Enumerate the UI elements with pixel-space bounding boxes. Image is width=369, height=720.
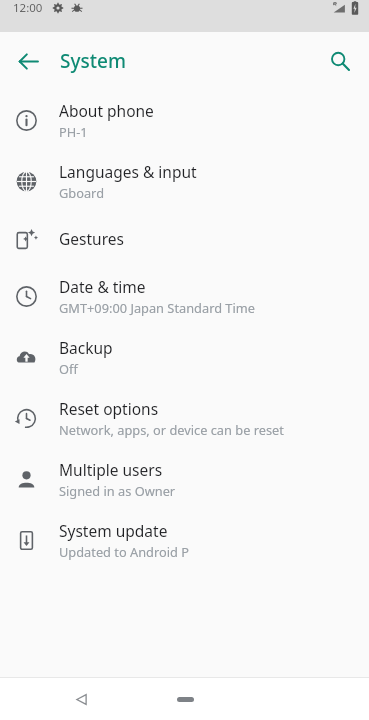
staticText: Date & time [59,276,146,297]
button[interactable]: Gestures [0,211,369,265]
staticText: Network, apps, or device can be reset [59,421,284,438]
button[interactable]: Home [163,684,207,714]
staticText: 12:00 [13,0,43,16]
staticText: Languages & input [59,161,197,182]
button[interactable]: Search [318,39,362,83]
button[interactable]: Back [6,39,50,83]
button[interactable]: Reset options [0,387,369,448]
staticText: Signed in as Owner [59,482,176,499]
staticText: System update [59,520,168,541]
staticText: GMT+09:00 Japan Standard Time [59,299,255,316]
staticText: Backup [59,337,113,358]
staticText: About phone [59,100,154,121]
button[interactable]: Date & time [0,265,369,326]
button[interactable]: Languages & input [0,150,369,211]
staticText: Multiple users [59,459,163,480]
button[interactable]: Multiple users [0,448,369,509]
staticText: Gboard [59,184,105,201]
button[interactable]: About phone [0,89,369,150]
button[interactable]: Backup [0,326,369,387]
staticText: System [60,48,126,74]
button[interactable]: System update [0,509,369,570]
staticText: Reset options [59,398,159,419]
staticText: PH-1 [59,123,88,140]
staticText: Gestures [59,228,124,249]
staticText: Off [59,360,78,377]
button[interactable]: Back [62,680,100,718]
staticText: Updated to Android P [59,543,189,560]
